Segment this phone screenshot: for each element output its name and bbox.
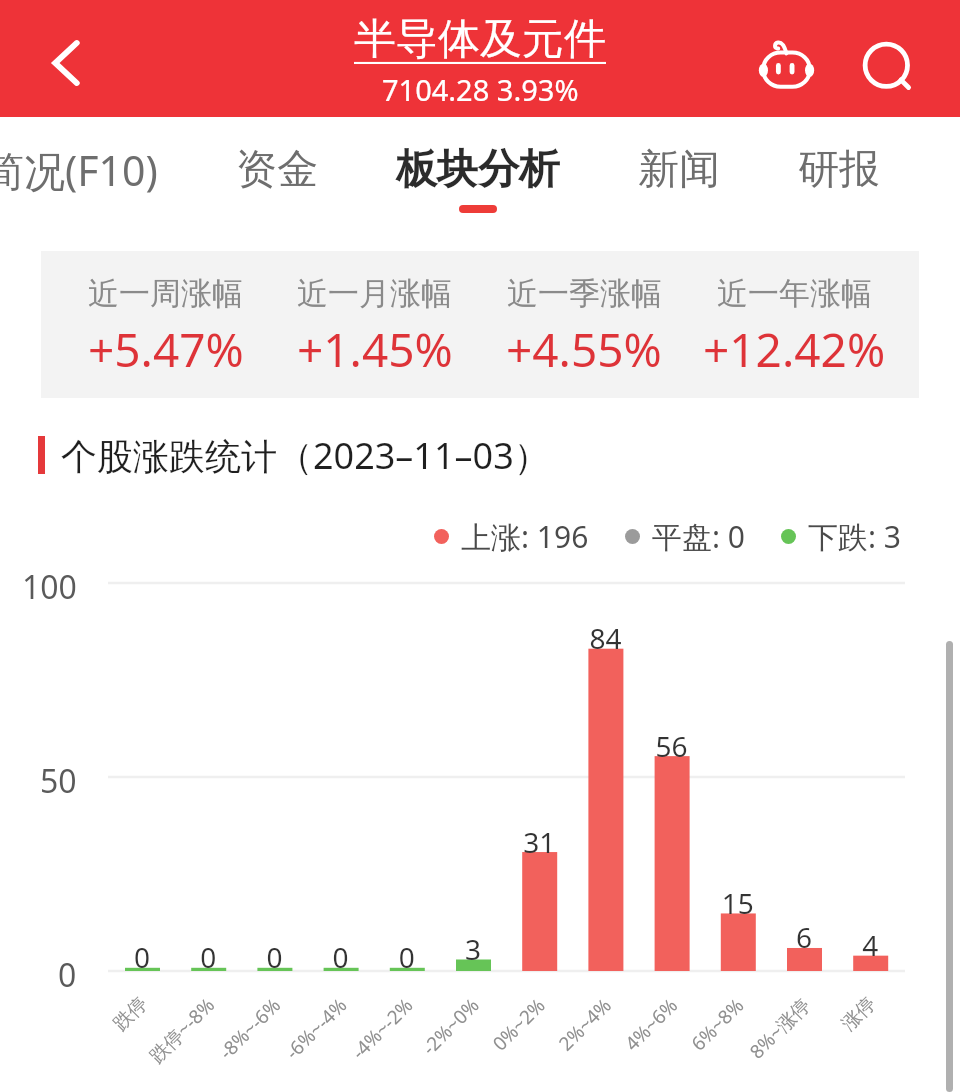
staticText: 近一年涨幅: [717, 274, 872, 313]
button[interactable]: 新闻: [599, 117, 759, 251]
staticText: +5.47%: [88, 318, 244, 381]
button[interactable]: 近一周涨幅: [41, 251, 919, 398]
staticText: +12.42%: [703, 318, 886, 381]
staticText: +1.45%: [297, 318, 453, 381]
button[interactable]: AI assistant: [744, 22, 829, 107]
staticText: 个股涨跌统计（2023–11–03）: [61, 431, 550, 480]
staticText: 近一季涨幅: [507, 274, 662, 313]
button[interactable]: Back: [26, 23, 106, 103]
button[interactable]: Search: [847, 27, 932, 112]
staticText: 7104.28 3.93%: [382, 70, 579, 109]
staticText: 新闻: [638, 144, 720, 196]
button[interactable]: 板块分析: [357, 117, 599, 251]
staticText: 近一月涨幅: [297, 274, 452, 313]
staticText: 近一周涨幅: [88, 274, 243, 313]
staticText: 资金: [236, 144, 318, 196]
staticText: 半导体及元件: [354, 13, 606, 66]
staticText: +4.55%: [506, 318, 662, 381]
staticText: 研报: [798, 144, 880, 196]
button[interactable]: 研报: [759, 117, 919, 251]
staticText: 平盘: 0: [652, 516, 745, 557]
staticText: 板块分析: [396, 144, 560, 196]
staticText: 上涨: 196: [461, 516, 589, 557]
button[interactable]: 简况(F10): [0, 117, 197, 251]
button[interactable]: 资金: [197, 117, 357, 251]
staticText: 简况(F10): [0, 142, 158, 198]
staticText: 下跌: 3: [808, 516, 901, 557]
